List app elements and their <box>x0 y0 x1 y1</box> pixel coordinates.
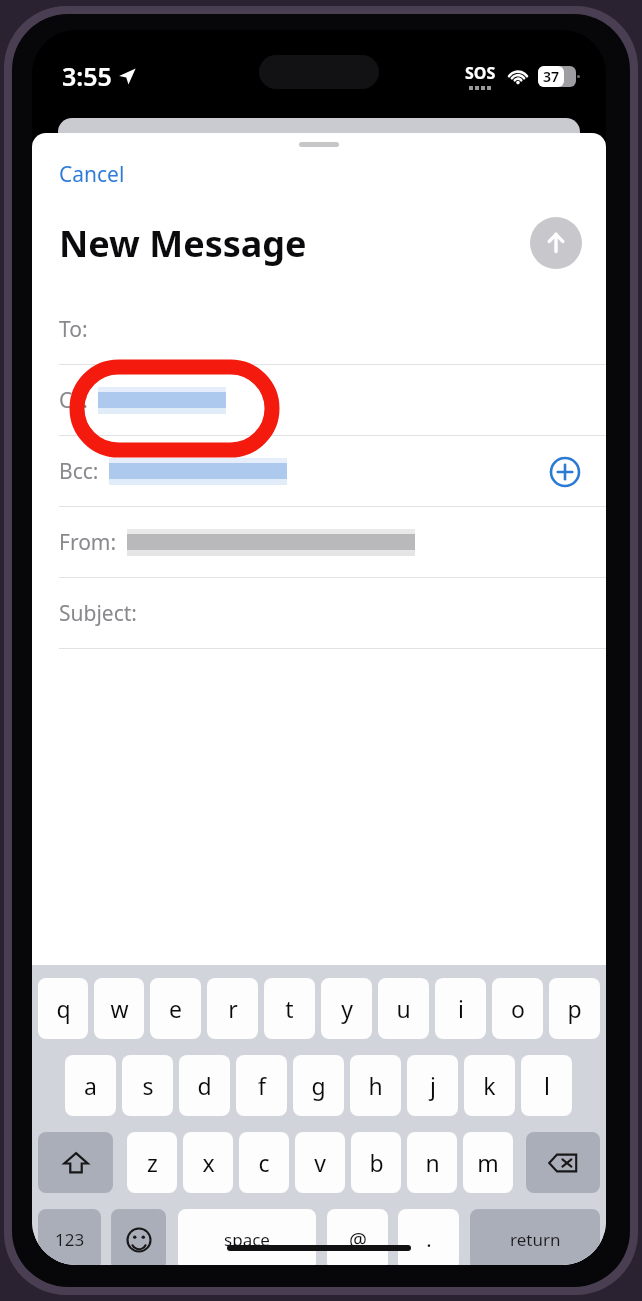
staticText: . <box>426 1226 432 1253</box>
button[interactable]: a <box>65 1055 116 1116</box>
staticText: New Message <box>59 219 307 268</box>
button[interactable]: p <box>549 978 600 1039</box>
staticText: a <box>84 1070 97 1101</box>
button[interactable]: t <box>264 978 315 1039</box>
staticText: i <box>458 993 464 1024</box>
button[interactable]: Send <box>530 217 582 269</box>
staticText: e <box>169 993 182 1024</box>
staticText: t <box>285 993 294 1024</box>
button[interactable]: @ <box>327 1209 388 1265</box>
staticText: SOS <box>465 62 496 84</box>
button[interactable]: space <box>178 1209 316 1265</box>
staticText: 123 <box>55 1228 85 1251</box>
button[interactable]: Subject: <box>32 578 606 649</box>
button[interactable]: d <box>179 1055 230 1116</box>
staticText: return <box>510 1228 561 1251</box>
button[interactable]: o <box>492 978 543 1039</box>
staticText: z <box>147 1147 158 1178</box>
staticText: c <box>258 1147 270 1178</box>
staticText: x <box>202 1147 215 1178</box>
button[interactable]: x <box>183 1132 233 1193</box>
button[interactable]: Add recipient <box>548 455 582 489</box>
staticText: v <box>314 1147 326 1178</box>
button[interactable]: j <box>407 1055 458 1116</box>
staticText: Subject: <box>59 599 137 628</box>
staticText: Bcc: <box>59 457 99 486</box>
staticText: space <box>224 1228 270 1251</box>
staticText: q <box>56 993 71 1024</box>
button[interactable]: 123 <box>38 1209 101 1265</box>
button[interactable]: u <box>378 978 429 1039</box>
button[interactable]: c <box>239 1132 289 1193</box>
staticText: j <box>430 1070 436 1101</box>
staticText: n <box>425 1147 440 1178</box>
button[interactable]: n <box>407 1132 457 1193</box>
button[interactable]: i <box>435 978 486 1039</box>
button[interactable]: m <box>463 1132 513 1193</box>
button[interactable]: f <box>236 1055 287 1116</box>
button[interactable]: s <box>122 1055 173 1116</box>
staticText: b <box>369 1147 384 1178</box>
button[interactable]: h <box>350 1055 401 1116</box>
staticText: u <box>396 993 411 1024</box>
button[interactable]: return <box>470 1209 600 1265</box>
staticText: k <box>483 1070 496 1101</box>
button[interactable]: Emoji <box>111 1209 166 1265</box>
staticText: s <box>142 1070 154 1101</box>
staticText: p <box>567 993 582 1024</box>
staticText: @ <box>349 1226 367 1253</box>
staticText: y <box>341 993 353 1024</box>
button[interactable]: r <box>207 978 258 1039</box>
staticText: 3:55 <box>62 59 112 93</box>
staticText: From: <box>59 528 117 557</box>
button[interactable]: e <box>150 978 201 1039</box>
button[interactable]: v <box>295 1132 345 1193</box>
button[interactable]: Cancel <box>32 158 137 193</box>
button[interactable]: b <box>351 1132 401 1193</box>
staticText: w <box>110 993 129 1024</box>
button[interactable]: Cc: <box>32 365 606 436</box>
button[interactable]: Bcc: <box>32 436 606 507</box>
other: Emoji <box>126 1227 152 1253</box>
staticText: Cc: <box>59 386 88 415</box>
other: Delete <box>548 1148 578 1178</box>
staticText: g <box>311 1070 326 1101</box>
button[interactable]: w <box>94 978 144 1039</box>
other: Shift <box>63 1150 89 1176</box>
staticText: d <box>197 1070 212 1101</box>
button[interactable]: q <box>38 978 88 1039</box>
staticText: o <box>511 993 525 1024</box>
staticText: Cancel <box>59 160 125 189</box>
staticText: To: <box>59 315 88 344</box>
button[interactable]: From: <box>32 507 606 578</box>
staticText: l <box>544 1070 550 1101</box>
staticText: f <box>258 1070 266 1101</box>
staticText: h <box>368 1070 383 1101</box>
button[interactable]: Delete <box>526 1132 600 1193</box>
button[interactable]: . <box>398 1209 459 1265</box>
button[interactable]: l <box>521 1055 572 1116</box>
button[interactable]: g <box>293 1055 344 1116</box>
button[interactable]: z <box>127 1132 177 1193</box>
button[interactable]: k <box>464 1055 515 1116</box>
staticText: r <box>228 993 238 1024</box>
button[interactable]: Shift <box>38 1132 113 1193</box>
button[interactable]: To: <box>32 294 606 365</box>
staticText: 37 <box>543 67 560 86</box>
button[interactable]: y <box>321 978 372 1039</box>
staticText: m <box>477 1147 499 1178</box>
